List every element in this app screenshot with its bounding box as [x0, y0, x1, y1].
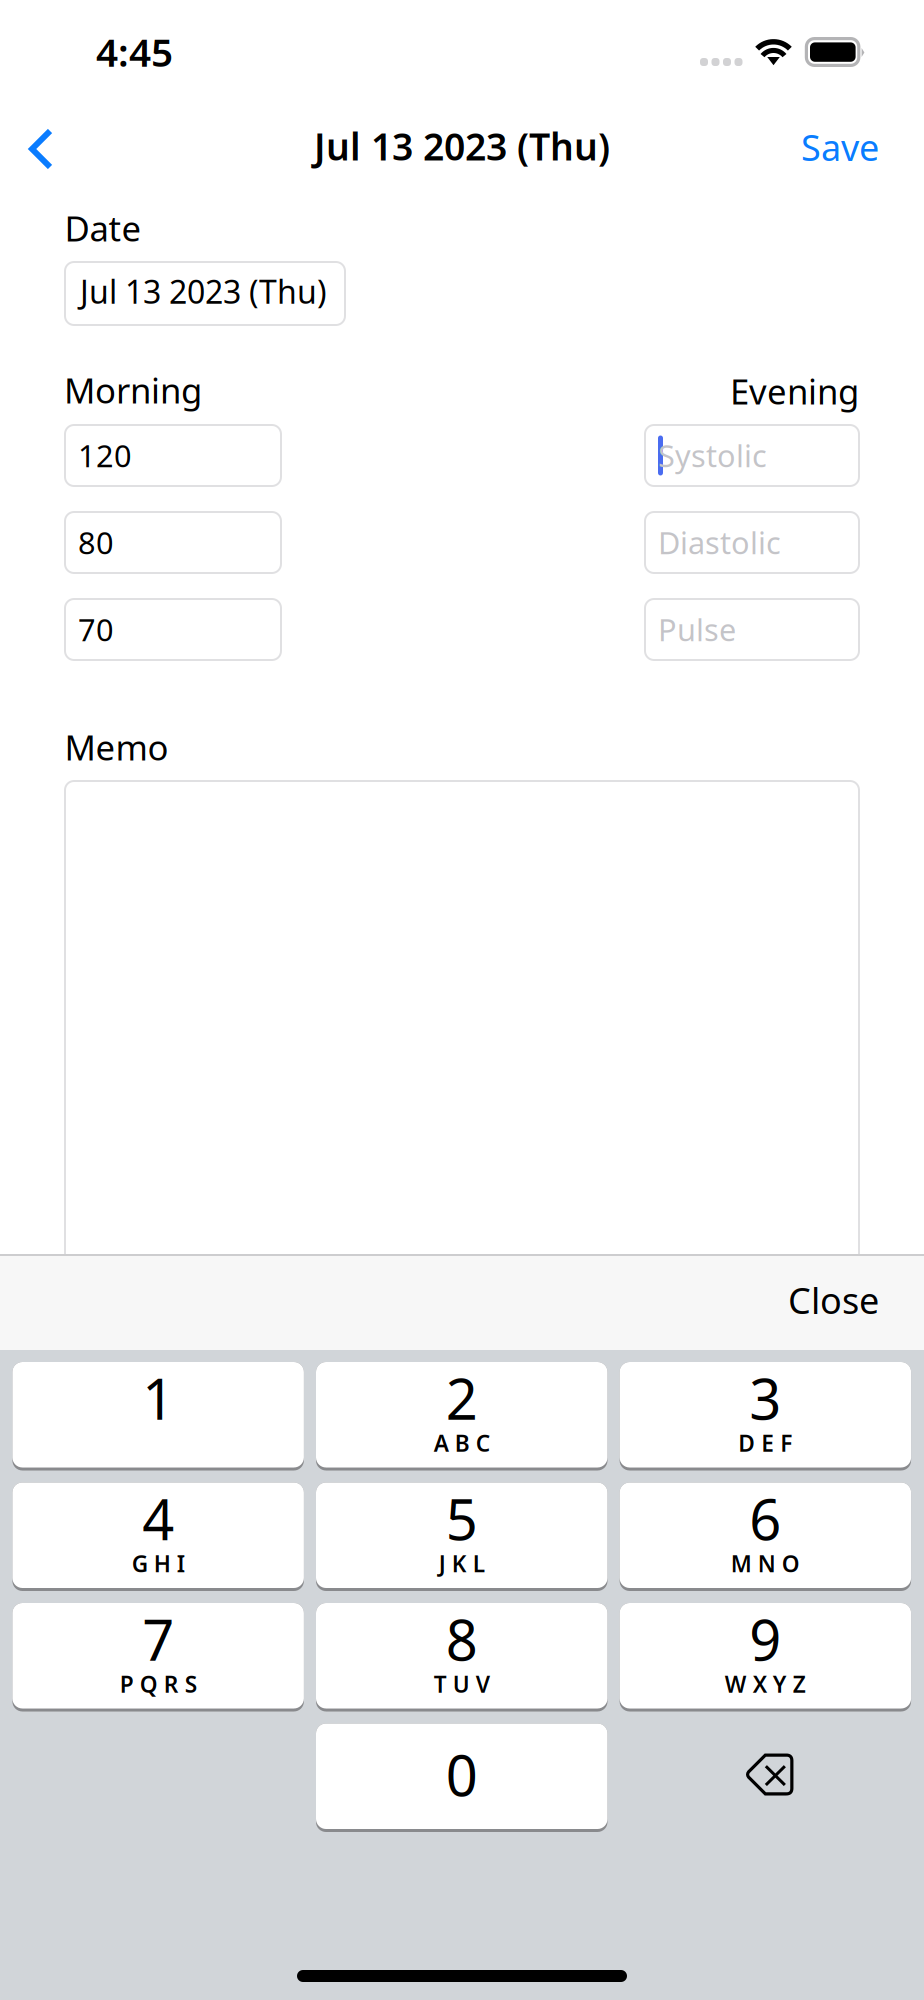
button[interactable]: 120 — [65, 425, 281, 486]
staticText: 80 — [78, 522, 114, 563]
staticText: Pulse — [658, 609, 736, 650]
staticText: 0 — [446, 1737, 478, 1812]
staticText: Date — [65, 205, 142, 251]
button[interactable]: Pulse — [645, 599, 859, 660]
staticText: W X Y Z — [725, 1669, 806, 1699]
staticText: Memo — [65, 724, 169, 770]
staticText: 3 — [749, 1361, 781, 1435]
button[interactable]: 3 — [620, 1362, 911, 1470]
button[interactable]: Back — [0, 111, 76, 187]
staticText: 120 — [78, 435, 132, 476]
button[interactable]: 9 — [620, 1603, 911, 1711]
staticText: 5 — [446, 1481, 478, 1556]
button[interactable]: 70 — [65, 599, 281, 660]
staticText: 8 — [446, 1602, 478, 1676]
button[interactable]: 0 — [316, 1723, 607, 1832]
staticText: 4:45 — [96, 26, 173, 77]
staticText: 1 — [142, 1361, 174, 1435]
button[interactable]: Jul 13 2023 (Thu) — [65, 262, 345, 325]
staticText: M N O — [731, 1548, 800, 1578]
button[interactable]: 1 — [12, 1362, 304, 1470]
staticText: Close — [788, 1276, 879, 1324]
button[interactable]: Diastolic — [645, 512, 859, 573]
staticText: Morning — [64, 367, 202, 413]
staticText: 2 — [446, 1361, 478, 1435]
button[interactable]: Systolic — [645, 425, 859, 486]
button[interactable]: Delete — [620, 1723, 911, 1832]
staticText: Diastolic — [658, 522, 781, 563]
button[interactable]: 6 — [620, 1482, 911, 1591]
staticText: A B C — [434, 1428, 490, 1458]
staticText: T U V — [434, 1669, 490, 1699]
button[interactable]: Close — [691, 1252, 921, 1348]
button[interactable]: 5 — [316, 1482, 607, 1591]
button[interactable]: 8 — [316, 1603, 607, 1711]
button[interactable]: 2 — [316, 1362, 607, 1470]
staticText: J K L — [439, 1548, 485, 1578]
staticText: 70 — [78, 609, 114, 650]
staticText: Jul 13 2023 (Thu) — [80, 270, 327, 312]
staticText: Systolic — [658, 435, 767, 476]
staticText: G H I — [132, 1548, 185, 1578]
staticText: D E F — [738, 1428, 792, 1458]
button[interactable]: 80 — [65, 512, 281, 573]
staticText: 9 — [749, 1602, 781, 1676]
button[interactable]: 4 — [12, 1482, 304, 1591]
staticText: P Q R S — [120, 1669, 197, 1699]
staticText: 7 — [142, 1602, 174, 1676]
staticText: 6 — [749, 1481, 781, 1556]
staticText: Jul 13 2023 (Thu) — [314, 121, 610, 171]
staticText: Save — [801, 123, 879, 171]
button[interactable]: 7 — [12, 1603, 304, 1711]
staticText: 4 — [142, 1481, 174, 1556]
staticText: Evening — [730, 368, 859, 414]
button[interactable]: Save — [757, 109, 879, 185]
